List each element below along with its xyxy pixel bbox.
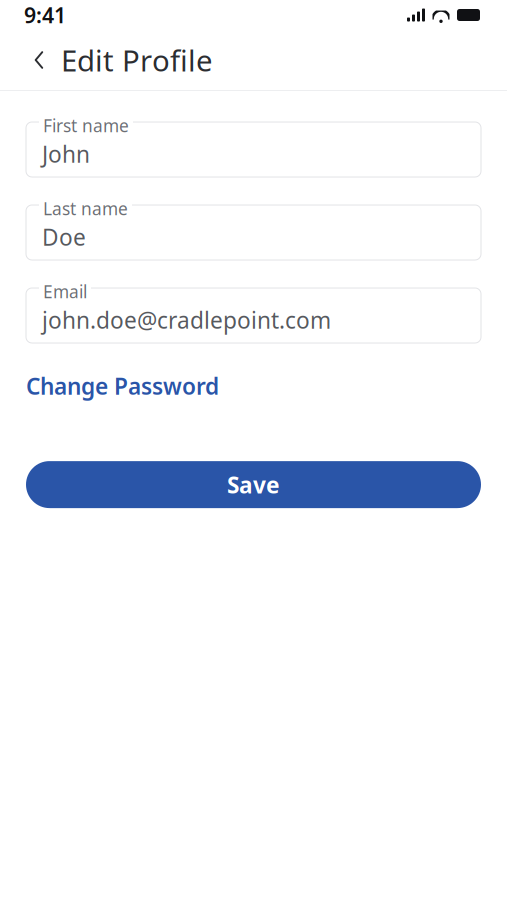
staticText: Last name xyxy=(43,197,128,220)
staticText: First name xyxy=(43,114,129,137)
staticText: Email xyxy=(43,280,87,303)
staticText: 9:41 xyxy=(24,1,66,29)
button[interactable]: Save xyxy=(26,461,481,508)
staticText: Save xyxy=(227,470,280,500)
button[interactable]: Back xyxy=(22,38,56,82)
staticText: Edit Profile xyxy=(61,40,213,79)
staticText: john.doe@cradlepoint.com xyxy=(42,305,331,335)
button[interactable]: Change Password xyxy=(26,365,219,407)
staticText: John xyxy=(42,139,90,169)
staticText: Change Password xyxy=(26,371,219,401)
staticText: Doe xyxy=(42,222,86,252)
